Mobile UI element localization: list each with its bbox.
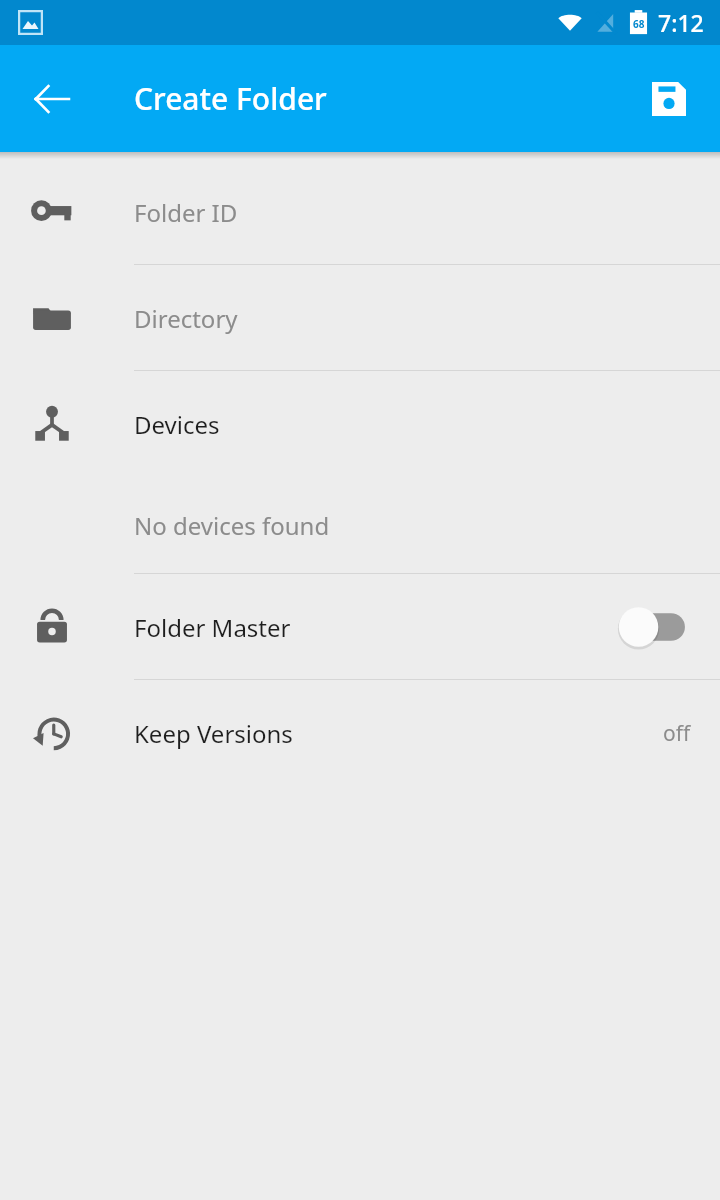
button[interactable]: Devices bbox=[0, 371, 720, 477]
button[interactable]: No devices found bbox=[0, 477, 720, 574]
staticText: off bbox=[663, 719, 691, 748]
button[interactable]: Navigate up bbox=[20, 67, 84, 131]
button[interactable]: Directory bbox=[0, 265, 720, 371]
button[interactable]: Keep Versions bbox=[0, 680, 720, 786]
staticText: Folder ID bbox=[134, 196, 238, 229]
staticText: 68 bbox=[633, 17, 645, 31]
staticText: 7:12 bbox=[658, 7, 704, 38]
button[interactable]: Folder Master toggle bbox=[615, 604, 691, 650]
staticText: Folder Master bbox=[134, 611, 291, 644]
button[interactable]: Folder ID bbox=[0, 159, 720, 265]
button[interactable]: Save bbox=[638, 68, 700, 130]
staticText: Directory bbox=[134, 302, 238, 335]
staticText: Devices bbox=[134, 408, 220, 441]
staticText: Keep Versions bbox=[134, 717, 293, 750]
staticText: No devices found bbox=[134, 509, 330, 542]
staticText: Create Folder bbox=[134, 78, 327, 119]
button[interactable]: Folder Master bbox=[0, 574, 720, 680]
